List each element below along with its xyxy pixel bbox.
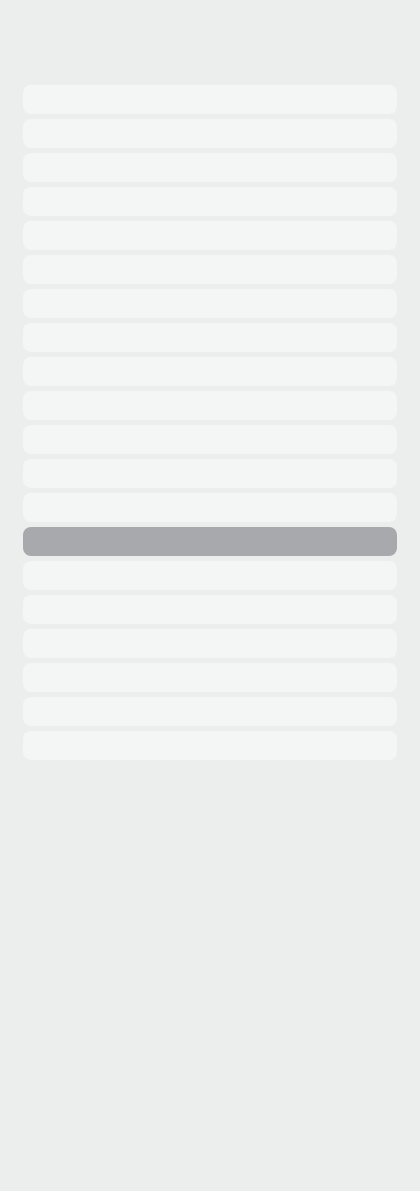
button[interactable]: Selected list item 14 [23,527,397,556]
